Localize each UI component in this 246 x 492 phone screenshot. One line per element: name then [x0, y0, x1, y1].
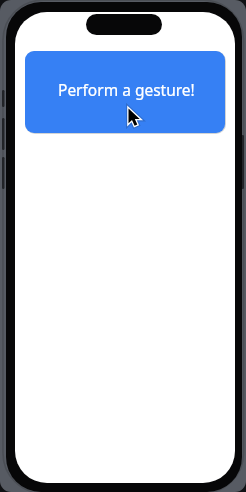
button[interactable]: Perform a gesture!: [25, 51, 225, 133]
staticText: Perform a gesture!: [58, 79, 195, 100]
